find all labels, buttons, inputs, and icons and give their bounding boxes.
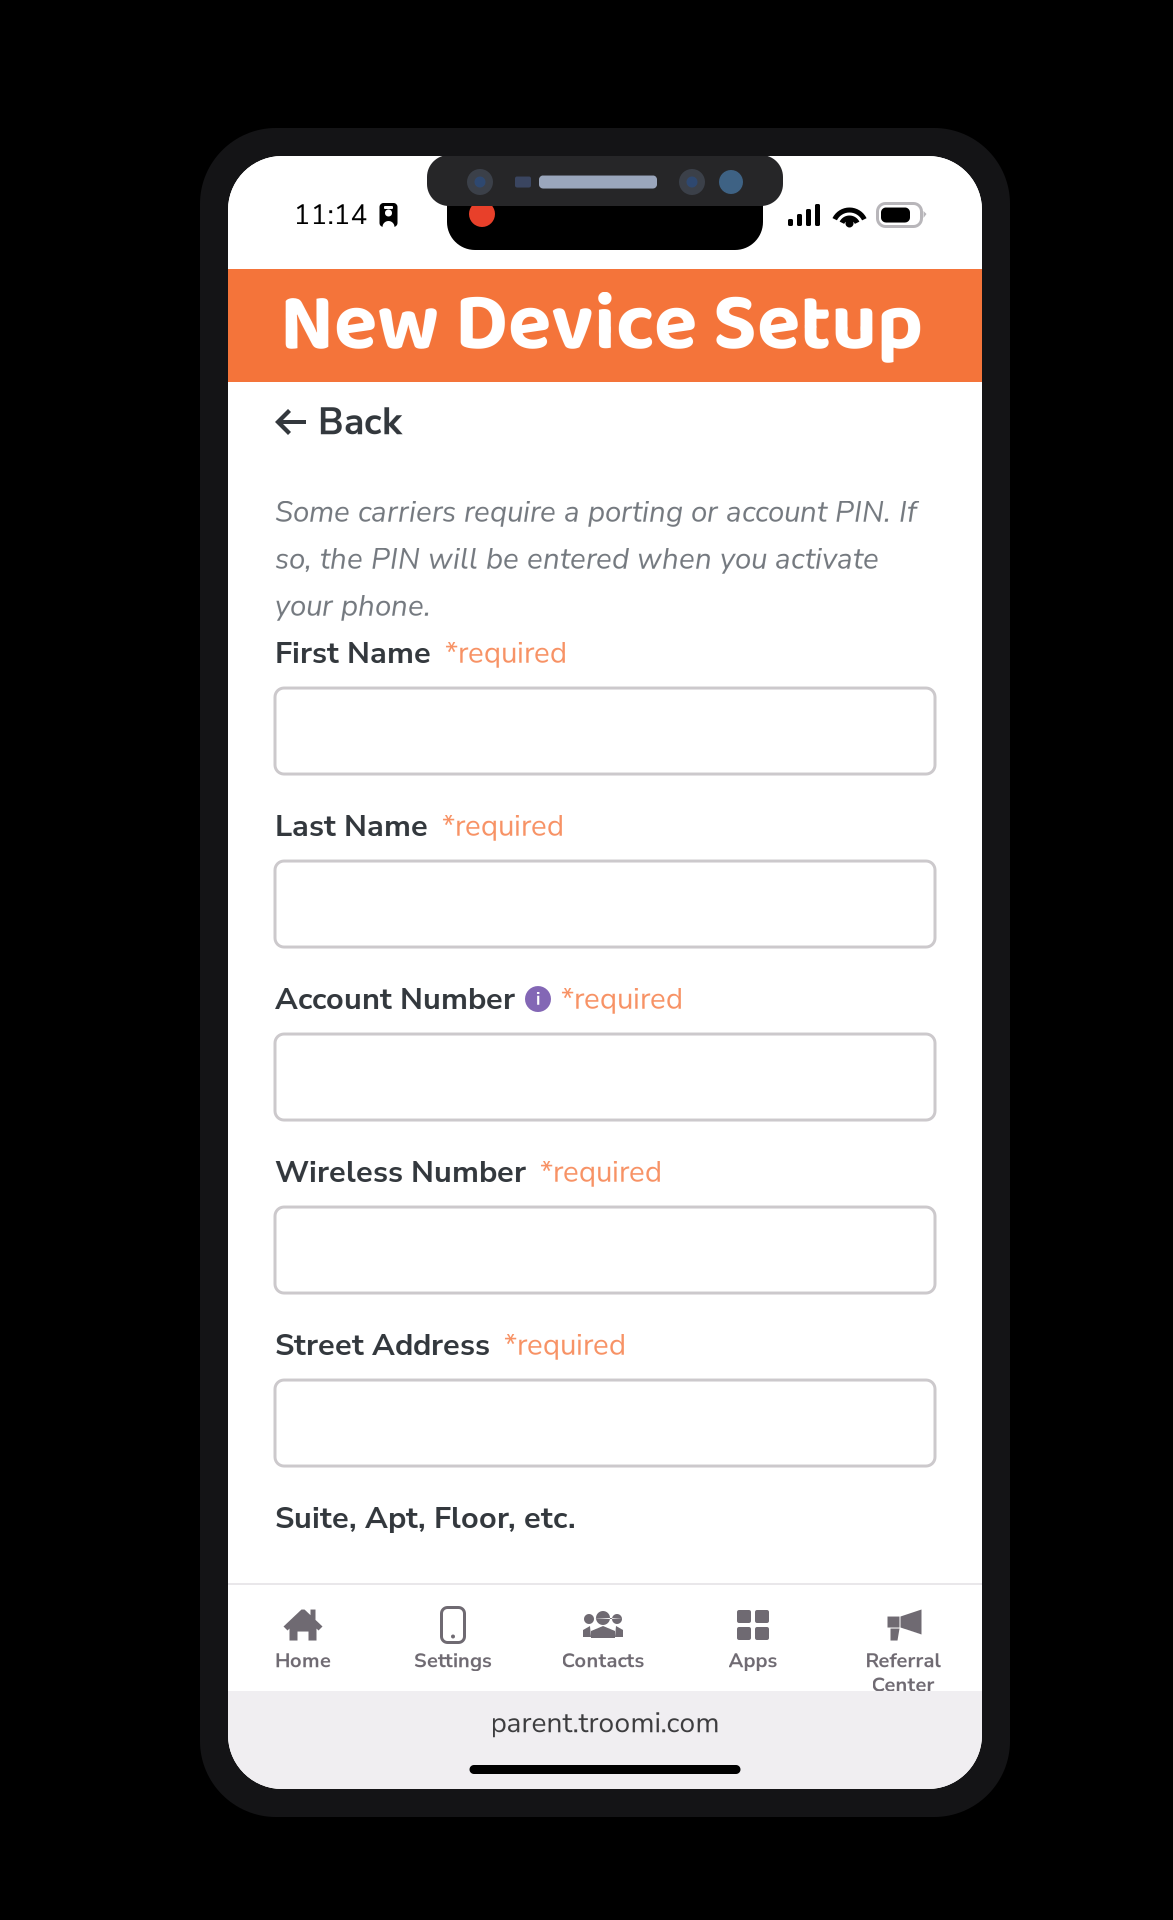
button[interactable]: Apps [678, 1585, 828, 1691]
button[interactable]: Settings [378, 1585, 528, 1691]
staticText: *required [540, 1152, 662, 1192]
staticText: *required [445, 633, 567, 673]
staticText: Some carriers require a porting or accou… [275, 492, 917, 626]
staticText: i [536, 987, 540, 1011]
staticText: New Device Setup [280, 261, 923, 390]
button[interactable]: Home [228, 1585, 378, 1691]
staticText: Apps [728, 1647, 777, 1674]
button[interactable]: Referral [828, 1585, 978, 1691]
staticText: Wireless Number [275, 1151, 526, 1193]
staticText: Street Address [275, 1324, 490, 1366]
staticText: 11:14 [293, 196, 367, 234]
staticText: Back [318, 396, 402, 447]
staticText: Home [275, 1647, 331, 1674]
staticText: Last Name [275, 805, 428, 847]
staticText: Account Number [275, 978, 515, 1020]
staticText: *required [561, 979, 683, 1019]
staticText: Contacts [561, 1647, 644, 1674]
staticText: parent.troomi.com [490, 1704, 719, 1742]
button[interactable]: Contacts [528, 1585, 678, 1691]
button[interactable]: Back [275, 394, 935, 450]
staticText: Referral [865, 1647, 940, 1674]
staticText: *required [442, 806, 564, 846]
staticText: *required [504, 1325, 626, 1365]
staticText: First Name [275, 632, 431, 674]
staticText: Settings [414, 1647, 492, 1674]
staticText: Center [871, 1671, 934, 1699]
staticText: Suite, Apt, Floor, etc. [275, 1497, 576, 1539]
